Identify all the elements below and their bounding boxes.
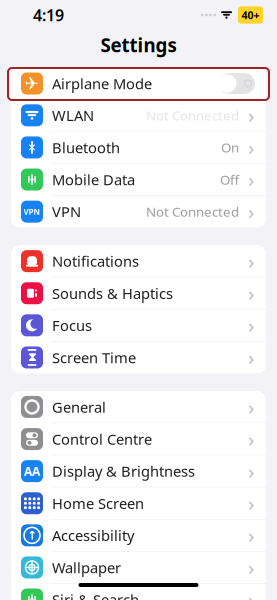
staticText: Control Centre [52,429,152,449]
staticText: Off [220,171,239,188]
button[interactable]: Sounds & Haptics [11,277,266,310]
staticText: ↑ [27,528,37,542]
button[interactable]: Mobile Data [11,164,266,196]
button[interactable]: VPN [11,196,266,227]
staticText: Mobile Data [52,170,135,189]
staticText: › [248,166,255,193]
staticText: › [248,102,255,129]
staticText: › [248,554,255,581]
staticText: AA [24,463,40,479]
button[interactable]: General [11,391,266,423]
staticText: ✈ [24,74,39,93]
staticText: Home Screen [52,493,144,513]
staticText: VPN [52,202,81,221]
staticText: Focus [52,316,92,335]
staticText: › [248,280,255,307]
button[interactable]: Wallpaper [11,552,266,584]
staticText: Not Connected [146,106,239,124]
staticText: Siri & Search [52,590,139,600]
staticText: Display & Brightness [52,461,195,481]
button[interactable]: ✕ [11,132,266,164]
staticText: WLAN [52,106,94,125]
staticText: › [248,458,255,484]
button[interactable]: WLAN [11,100,266,132]
staticText: Screen Time [52,348,136,367]
staticText: Settings [100,33,176,57]
staticText: › [248,134,255,161]
staticText: Not Connected [146,203,239,220]
staticText: Wallpaper [52,558,121,577]
staticText: › [248,312,255,339]
button[interactable]: Control Centre [11,423,266,455]
button[interactable]: Siri & Search [11,584,266,600]
button[interactable]: Home Screen [11,487,266,520]
staticText: General [52,397,106,417]
button[interactable]: ⧗ [11,342,266,373]
staticText: Sounds & Haptics [52,283,173,303]
button[interactable]: ↑ [11,520,266,552]
staticText: › [248,426,255,452]
staticText: › [248,248,255,274]
staticText: › [248,522,255,549]
button[interactable]: Focus [11,310,266,342]
staticText: Bluetooth [52,138,120,157]
button[interactable]: Notifications [11,245,266,277]
staticText: ⧗ [28,352,36,363]
staticText: 40+ [241,8,259,22]
staticText: 4:19 [33,4,64,26]
staticText: VPN [23,206,40,217]
staticText: Notifications [52,251,139,271]
staticText: › [248,198,255,225]
staticText: › [248,490,255,517]
staticText: ✕ [27,141,36,153]
button[interactable]: AA [11,455,266,487]
staticText: On [221,139,239,156]
staticText: Airplane Mode [52,74,152,93]
staticText: › [248,344,255,371]
staticText: › [248,394,255,420]
staticText: › [248,586,255,600]
staticText: Accessibility [52,526,134,545]
button[interactable]: ✈ [11,68,266,100]
